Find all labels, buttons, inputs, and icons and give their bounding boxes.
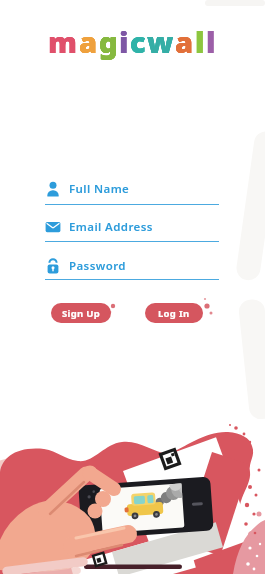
staticText: g [99,22,119,61]
staticText: a [79,22,99,61]
staticText: g [99,22,119,61]
staticText: i [119,22,130,61]
staticText: a [175,22,195,61]
staticText: i [119,22,130,61]
staticText: a [79,22,99,61]
staticText: c [130,22,147,61]
button[interactable]: Full Name [45,179,219,199]
staticText: w [147,22,175,61]
staticText: Log In [158,307,190,320]
staticText: c [130,22,147,61]
staticText: l [206,22,217,61]
staticText: l [195,22,206,61]
staticText: Full Name [69,181,130,197]
staticText: l [206,22,217,61]
button[interactable]: Log In [145,303,203,323]
button[interactable]: Email Address [45,217,219,237]
staticText: l [195,22,206,61]
staticText: m [48,22,79,61]
staticText: c [130,22,147,61]
staticText: Sign Up [62,307,101,320]
staticText: a [175,22,195,61]
staticText: m [48,22,79,61]
staticText: w [147,22,175,61]
staticText: i [119,22,130,61]
staticText: a [175,22,195,61]
staticText: a [79,22,99,61]
button[interactable]: Password [45,256,219,276]
staticText: Password [69,258,126,274]
staticText: w [147,22,175,61]
staticText: l [206,22,217,61]
staticText: l [195,22,206,61]
button[interactable]: Sign Up [51,303,111,323]
staticText: Email Address [69,219,153,235]
staticText: m [48,22,79,61]
staticText: g [99,22,119,61]
